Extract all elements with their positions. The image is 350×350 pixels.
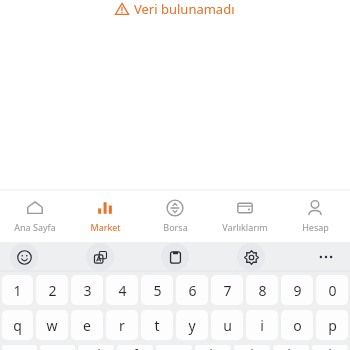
button[interactable]: 3 bbox=[71, 275, 103, 305]
button[interactable]: 7 bbox=[211, 275, 243, 305]
staticText: 0 bbox=[328, 281, 337, 300]
button[interactable]: w bbox=[36, 310, 68, 340]
button[interactable]: o bbox=[281, 310, 313, 340]
button[interactable]: e bbox=[71, 310, 103, 340]
button[interactable]: Clipboard bbox=[161, 243, 189, 271]
staticText: Ana Sayfa bbox=[14, 221, 56, 233]
staticText: l bbox=[328, 345, 332, 350]
button[interactable]: Ana Sayfa bbox=[0, 190, 70, 242]
staticText: e bbox=[83, 316, 91, 335]
button[interactable]: Hesap bbox=[280, 190, 350, 242]
staticText: h bbox=[209, 345, 218, 350]
staticText: Market bbox=[90, 221, 121, 233]
button[interactable]: 1 bbox=[2, 275, 33, 305]
button[interactable]: Market bbox=[70, 190, 140, 242]
button[interactable]: p bbox=[316, 310, 348, 340]
button[interactable]: Varlıklarım bbox=[210, 190, 280, 242]
staticText: Varlıklarım bbox=[222, 221, 268, 233]
button[interactable]: 0 bbox=[316, 275, 348, 305]
staticText: r bbox=[119, 316, 125, 335]
button[interactable]: More bbox=[312, 243, 340, 271]
staticText: 7 bbox=[223, 281, 232, 300]
staticText: 1 bbox=[13, 281, 22, 300]
staticText: t bbox=[154, 316, 160, 335]
button[interactable]: f bbox=[117, 345, 153, 350]
button[interactable]: Settings bbox=[237, 243, 265, 271]
button[interactable]: q bbox=[2, 310, 33, 340]
staticText: Borsa bbox=[163, 221, 188, 233]
staticText: i bbox=[260, 316, 264, 335]
button[interactable]: 2 bbox=[36, 275, 68, 305]
button[interactable]: k bbox=[273, 345, 309, 350]
staticText: k bbox=[287, 345, 295, 350]
button[interactable]: 9 bbox=[281, 275, 313, 305]
staticText: 5 bbox=[153, 281, 162, 300]
staticText: Hesap bbox=[302, 221, 329, 233]
button[interactable]: 5 bbox=[141, 275, 173, 305]
staticText: f bbox=[133, 345, 138, 350]
button[interactable]: 6 bbox=[176, 275, 208, 305]
staticText: u bbox=[223, 316, 232, 335]
button[interactable]: Borsa bbox=[140, 190, 210, 242]
staticText: q bbox=[13, 316, 22, 335]
staticText: 2 bbox=[48, 281, 57, 300]
button[interactable]: u bbox=[211, 310, 243, 340]
button[interactable]: 8 bbox=[246, 275, 278, 305]
staticText: 9 bbox=[293, 281, 302, 300]
button[interactable]: t bbox=[141, 310, 173, 340]
button[interactable]: Translate bbox=[86, 243, 114, 271]
staticText: 4 bbox=[118, 281, 127, 300]
button[interactable]: d bbox=[78, 345, 114, 350]
staticText: y bbox=[188, 316, 196, 335]
staticText: 6 bbox=[188, 281, 197, 300]
staticText: Veri bulunamadı bbox=[134, 0, 235, 18]
staticText: j bbox=[250, 345, 254, 350]
staticText: 8 bbox=[258, 281, 267, 300]
staticText: p bbox=[328, 316, 337, 335]
staticText: o bbox=[293, 316, 302, 335]
button[interactable]: r bbox=[106, 310, 138, 340]
button[interactable]: h bbox=[195, 345, 231, 350]
button[interactable]: l bbox=[312, 345, 348, 350]
button[interactable]: 4 bbox=[106, 275, 138, 305]
button[interactable]: i bbox=[246, 310, 278, 340]
button[interactable]: j bbox=[234, 345, 270, 350]
staticText: 3 bbox=[83, 281, 92, 300]
staticText: d bbox=[92, 345, 101, 350]
button[interactable]: Emoji bbox=[10, 243, 38, 271]
staticText: w bbox=[46, 316, 58, 335]
button[interactable]: y bbox=[176, 310, 208, 340]
